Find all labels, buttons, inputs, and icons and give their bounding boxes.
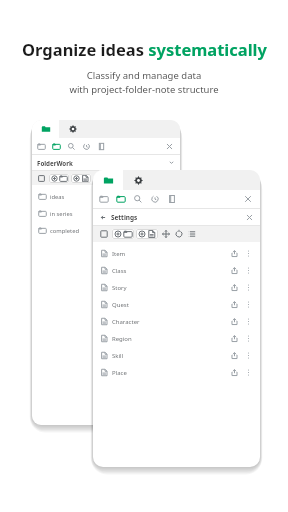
- button[interactable]: New note: [137, 229, 147, 239]
- staticText: Region: [112, 335, 132, 343]
- button[interactable]: Folders: [116, 194, 126, 204]
- staticText: FolderWork: [37, 159, 73, 167]
- button[interactable]: Settings tab: [123, 170, 153, 190]
- button[interactable]: in series: [38, 205, 180, 222]
- button[interactable]: Search: [133, 194, 143, 204]
- button[interactable]: Share Quest: [230, 300, 239, 309]
- button[interactable]: New note: [72, 174, 81, 183]
- button[interactable]: Note: [147, 229, 157, 239]
- button[interactable]: Region: [100, 330, 253, 347]
- staticText: Settings: [111, 213, 138, 222]
- button[interactable]: Share Character: [230, 317, 239, 326]
- button[interactable]: Share Class: [230, 266, 239, 275]
- button[interactable]: Class: [100, 266, 109, 275]
- staticText: completed: [50, 227, 79, 235]
- button[interactable]: New note: [72, 174, 90, 183]
- button[interactable]: Notebook: [97, 142, 106, 151]
- button[interactable]: New folder: [113, 229, 133, 239]
- button[interactable]: Search: [67, 142, 76, 151]
- button[interactable]: Settings tab: [133, 175, 144, 186]
- button[interactable]: Folder: [123, 229, 133, 239]
- button[interactable]: completed: [38, 226, 47, 235]
- button[interactable]: Class: [100, 262, 253, 279]
- button[interactable]: New folder: [50, 174, 68, 183]
- button[interactable]: Close: [245, 213, 254, 222]
- button[interactable]: Archive: [99, 194, 109, 204]
- button[interactable]: More options for Class: [244, 266, 253, 275]
- button[interactable]: FolderWork: [37, 155, 175, 170]
- button[interactable]: Archive: [37, 142, 46, 151]
- button[interactable]: Move: [161, 229, 171, 239]
- button[interactable]: Share Item: [230, 249, 239, 258]
- button[interactable]: Folder tab: [32, 120, 59, 138]
- button[interactable]: More options for Region: [244, 334, 253, 343]
- staticText: Skill: [112, 352, 124, 360]
- button[interactable]: New note: [137, 229, 157, 239]
- button[interactable]: Back: [99, 213, 108, 222]
- button[interactable]: Share Skill: [230, 351, 239, 360]
- button[interactable]: Share Region: [230, 334, 239, 343]
- button[interactable]: completed: [38, 222, 180, 239]
- button[interactable]: History: [150, 194, 160, 204]
- button[interactable]: Place: [100, 368, 109, 377]
- button[interactable]: Skill: [100, 347, 253, 364]
- button[interactable]: ideas: [38, 188, 180, 205]
- staticText: Classify and manage data with project-fo…: [69, 69, 219, 96]
- button[interactable]: Folder tab: [103, 175, 114, 186]
- button[interactable]: Sort: [187, 229, 197, 239]
- button[interactable]: Item: [100, 249, 109, 258]
- staticText: Story: [112, 284, 127, 292]
- button[interactable]: ideas: [38, 192, 47, 201]
- button[interactable]: New folder: [50, 174, 59, 183]
- button[interactable]: Folders: [52, 142, 61, 151]
- button[interactable]: History: [82, 142, 91, 151]
- button[interactable]: Skill: [100, 351, 109, 360]
- button[interactable]: Close: [243, 194, 253, 204]
- button[interactable]: Story: [100, 283, 109, 292]
- button[interactable]: Back: [99, 209, 254, 225]
- button[interactable]: Quest: [100, 296, 253, 313]
- button[interactable]: Region: [100, 334, 109, 343]
- button[interactable]: Quest: [100, 300, 109, 309]
- button[interactable]: Folder: [59, 174, 68, 183]
- staticText: Item: [112, 250, 126, 258]
- button[interactable]: Folder tab: [93, 170, 123, 190]
- button[interactable]: More options for Character: [244, 317, 253, 326]
- staticText: Quest: [112, 301, 129, 309]
- button[interactable]: New folder: [113, 229, 123, 239]
- button[interactable]: Place: [100, 364, 253, 381]
- button[interactable]: Settings tab: [59, 120, 86, 138]
- button[interactable]: in series: [38, 209, 47, 218]
- button[interactable]: Story: [100, 279, 253, 296]
- staticText: in series: [50, 210, 73, 218]
- staticText: ideas: [50, 193, 65, 201]
- button[interactable]: Select all: [99, 229, 109, 239]
- button[interactable]: Settings tab: [68, 124, 78, 134]
- button[interactable]: Share Place: [230, 368, 239, 377]
- staticText: Character: [112, 318, 140, 326]
- button[interactable]: More options for Quest: [244, 300, 253, 309]
- button[interactable]: Note: [81, 174, 90, 183]
- button[interactable]: More options for Story: [244, 283, 253, 292]
- button[interactable]: More options for Skill: [244, 351, 253, 360]
- staticText: Organize ideas systematically: [22, 38, 267, 60]
- button[interactable]: Close: [165, 142, 174, 151]
- button[interactable]: More options for Item: [244, 249, 253, 258]
- button[interactable]: Character: [100, 313, 253, 330]
- button[interactable]: Refresh: [174, 229, 184, 239]
- button[interactable]: Item: [100, 245, 253, 262]
- button[interactable]: Notebook: [167, 194, 177, 204]
- staticText: Class: [112, 267, 127, 275]
- button[interactable]: Folder tab: [41, 124, 51, 134]
- button[interactable]: More options for Place: [244, 368, 253, 377]
- button[interactable]: Share Story: [230, 283, 239, 292]
- button[interactable]: Character: [100, 317, 109, 326]
- staticText: Place: [112, 369, 127, 377]
- button[interactable]: Select all: [37, 174, 46, 183]
